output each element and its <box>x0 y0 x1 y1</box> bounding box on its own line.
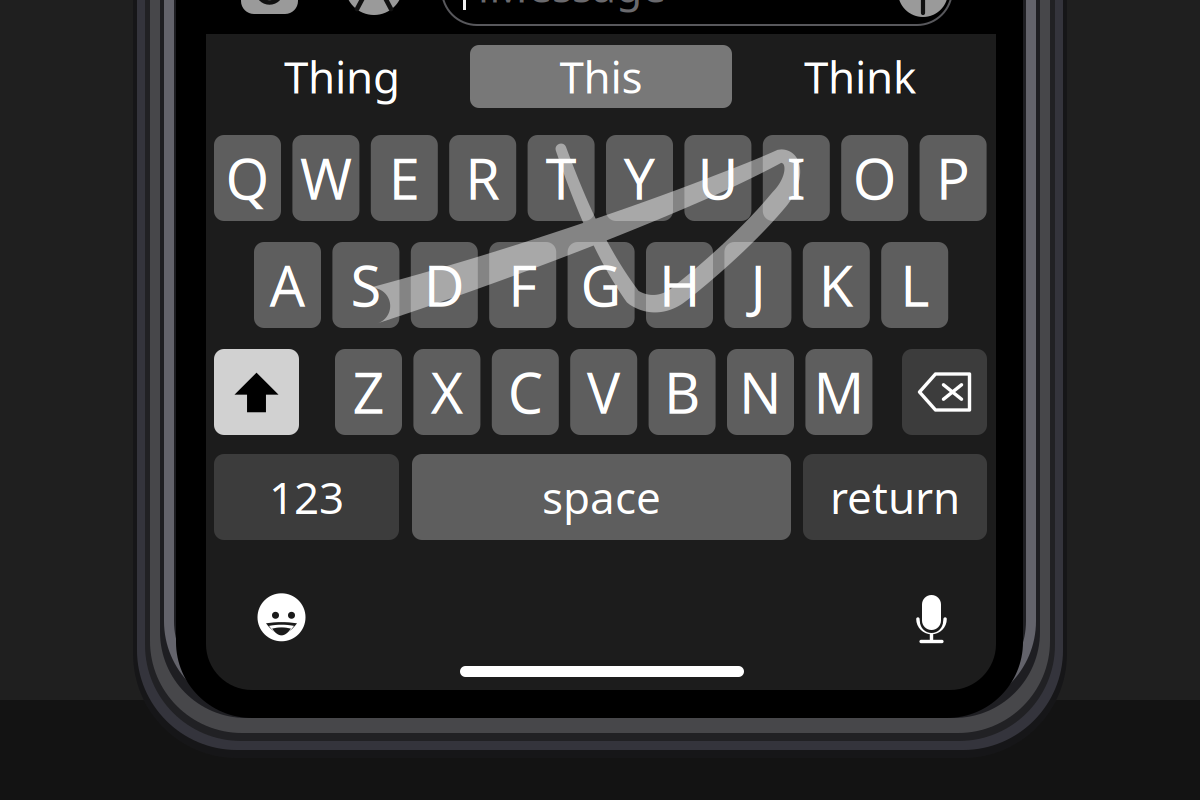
staticText: L <box>900 248 929 322</box>
staticText: U <box>697 141 738 215</box>
button[interactable]: space <box>412 454 791 540</box>
button[interactable]: G <box>568 242 635 328</box>
staticText: Z <box>352 355 384 429</box>
button[interactable]: Apps <box>345 0 403 15</box>
button[interactable]: This <box>470 45 732 108</box>
button[interactable]: M <box>805 349 872 435</box>
staticText: A <box>269 248 305 322</box>
staticText: C <box>508 355 543 429</box>
staticText: M <box>813 355 864 429</box>
staticText: E <box>389 141 420 215</box>
staticText: G <box>581 248 622 322</box>
button[interactable]: K <box>803 242 870 328</box>
button[interactable]: J <box>724 242 791 328</box>
staticText: T <box>546 141 577 215</box>
button[interactable]: S <box>332 242 399 328</box>
button[interactable]: V <box>570 349 637 435</box>
button[interactable]: W <box>292 135 359 221</box>
staticText: O <box>853 141 897 215</box>
button[interactable]: D <box>411 242 478 328</box>
button[interactable]: Camera <box>241 0 298 14</box>
staticText: P <box>936 141 970 215</box>
button[interactable]: Thing <box>214 45 470 108</box>
button[interactable]: 123 <box>214 454 399 540</box>
button[interactable]: R <box>449 135 516 221</box>
button[interactable]: F <box>489 242 556 328</box>
button[interactable]: I <box>763 135 830 221</box>
staticText: Thing <box>284 47 400 106</box>
staticText: Think <box>804 47 916 106</box>
staticText: Y <box>623 141 655 215</box>
button[interactable]: E <box>371 135 438 221</box>
button[interactable]: O <box>841 135 908 221</box>
staticText: B <box>664 355 700 429</box>
button[interactable]: return <box>803 454 987 540</box>
button[interactable]: Q <box>214 135 281 221</box>
button[interactable]: Shift <box>214 349 299 435</box>
staticText: space <box>542 468 661 526</box>
staticText: K <box>819 248 854 322</box>
staticText: N <box>739 355 782 429</box>
button[interactable]: Z <box>335 349 402 435</box>
staticText: Q <box>225 141 269 215</box>
staticText: D <box>424 248 465 322</box>
button[interactable]: Think <box>732 45 988 108</box>
staticText: X <box>430 355 463 429</box>
button[interactable]: H <box>646 242 713 328</box>
button[interactable]: Emoji <box>257 593 305 641</box>
button[interactable]: Send <box>898 0 948 17</box>
staticText: J <box>750 248 765 322</box>
button[interactable]: Y <box>606 135 673 221</box>
button[interactable]: Dictate <box>907 594 955 646</box>
button[interactable]: B <box>649 349 716 435</box>
staticText: S <box>350 248 381 322</box>
staticText: return <box>830 468 960 526</box>
staticText: This <box>559 47 642 106</box>
button[interactable]: X <box>413 349 480 435</box>
staticText: V <box>587 355 621 429</box>
staticText: H <box>659 248 700 322</box>
button[interactable]: iMessage text field <box>442 0 952 25</box>
staticText: 123 <box>269 468 344 526</box>
staticText: F <box>508 248 537 322</box>
button[interactable]: A <box>254 242 321 328</box>
staticText: I <box>787 141 806 215</box>
button[interactable]: Delete <box>902 349 987 435</box>
button[interactable]: U <box>684 135 751 221</box>
button[interactable]: N <box>727 349 794 435</box>
staticText: iMessage <box>478 0 666 14</box>
staticText: R <box>465 141 500 215</box>
button[interactable]: P <box>920 135 987 221</box>
button[interactable]: T <box>528 135 595 221</box>
button[interactable]: L <box>881 242 948 328</box>
staticText: W <box>300 141 352 215</box>
button[interactable]: C <box>492 349 559 435</box>
